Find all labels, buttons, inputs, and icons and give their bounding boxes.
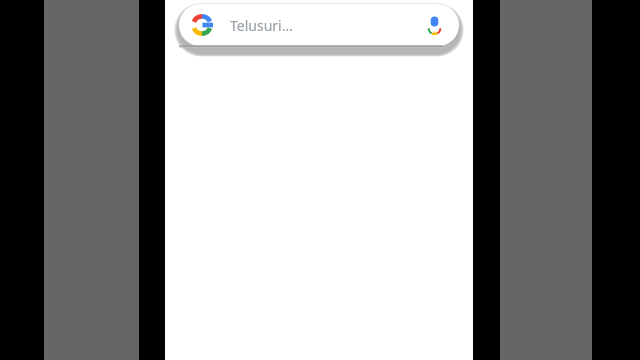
button[interactable]: Telusuri... bbox=[179, 4, 459, 46]
button[interactable]: Voice search bbox=[421, 12, 447, 38]
staticText: Telusuri... bbox=[230, 16, 293, 35]
